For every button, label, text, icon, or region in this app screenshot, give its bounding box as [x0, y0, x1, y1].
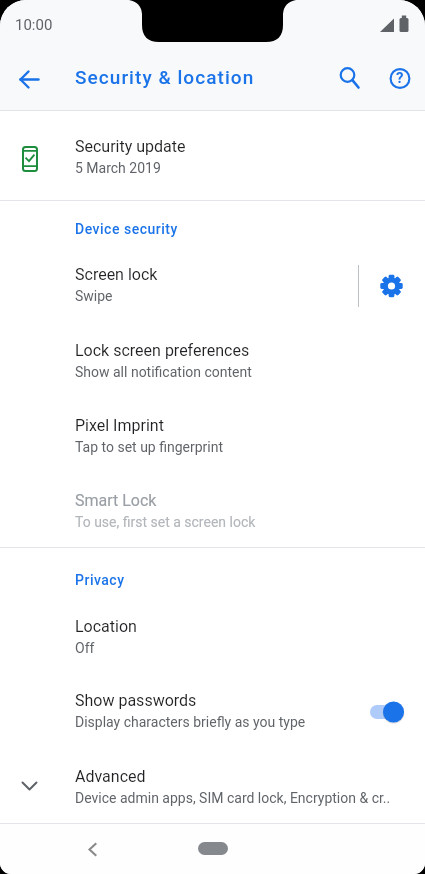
staticText: Advanced [75, 767, 146, 786]
staticText: Security & location [75, 66, 255, 88]
staticText: Pixel Imprint [75, 416, 164, 435]
staticText: Display characters briefly as you type [75, 714, 306, 730]
staticText: Lock screen preferences [75, 341, 250, 360]
button[interactable]: Security update [0, 119, 425, 193]
button[interactable] [13, 63, 46, 96]
staticText: Privacy [75, 572, 125, 588]
button[interactable]: Location [0, 599, 425, 673]
staticText: Off [75, 640, 95, 656]
staticText: Smart Lock [75, 491, 157, 510]
button[interactable]: Screen lock [0, 247, 425, 321]
button[interactable]: Lock screen preferences [0, 323, 425, 397]
staticText: To use, first set a screen lock [75, 514, 256, 530]
button[interactable] [72, 829, 112, 869]
staticText: 5 March 2019 [75, 160, 161, 176]
button[interactable] [371, 265, 412, 306]
staticText: Swipe [75, 288, 113, 304]
button[interactable]: Show passwords [0, 673, 425, 747]
staticText: Show all notification content [75, 364, 252, 380]
staticText: Show passwords [75, 691, 197, 710]
staticText: ? [396, 69, 404, 87]
button[interactable]: Pixel Imprint [0, 398, 425, 472]
staticText: Screen lock [75, 265, 158, 284]
button[interactable]: Advanced [0, 749, 425, 823]
staticText: Tap to set up fingerprint [75, 439, 224, 455]
staticText: Device admin apps, SIM card lock, Encryp… [75, 790, 391, 806]
staticText: Security update [75, 137, 186, 156]
button[interactable] [198, 842, 228, 855]
button[interactable]: ? [384, 62, 416, 94]
staticText: 10:00 [15, 16, 53, 34]
button[interactable]: Smart Lock [0, 473, 425, 547]
button[interactable] [333, 62, 365, 94]
staticText: Device security [75, 221, 178, 237]
staticText: Location [75, 617, 137, 636]
